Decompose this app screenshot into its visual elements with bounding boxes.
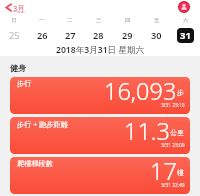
button[interactable]: Profile [178, 1, 190, 13]
staticText: 31 [180, 29, 191, 42]
staticText: 30 [151, 29, 162, 42]
staticText: 一 [39, 17, 45, 24]
staticText: 28 [93, 29, 104, 42]
button[interactable]: 27 [56, 27, 84, 43]
button[interactable]: 步行 [10, 77, 190, 114]
staticText: 25 [9, 29, 20, 42]
button[interactable]: 28 [84, 27, 113, 43]
staticText: 步 [177, 88, 184, 97]
staticText: 3/31 22:40 [161, 182, 185, 189]
staticText: 3/31 23:00 [161, 142, 185, 149]
staticText: 29 [122, 29, 133, 42]
staticText: 樓 [177, 168, 184, 177]
button[interactable]: 26 [28, 27, 56, 43]
staticText: 六 [183, 17, 189, 24]
button[interactable]: 3月 [4, 2, 25, 13]
button[interactable]: 29 [113, 27, 142, 43]
button[interactable]: 25 [0, 27, 28, 43]
staticText: 11.3 [124, 117, 170, 147]
button[interactable]: 爬樓梯段數 [10, 157, 190, 194]
staticText: 2018年3月31日 星期六 [56, 44, 145, 56]
staticText: 日 [11, 17, 17, 24]
staticText: 步行 [17, 79, 32, 88]
staticText: 26 [37, 29, 48, 42]
staticText: 步行 + 跑步距離 [17, 119, 68, 129]
staticText: 3月 [13, 3, 25, 13]
button[interactable]: 步行 + 跑步距離 [10, 117, 190, 154]
staticText: 二 [67, 17, 73, 24]
staticText: 公里 [170, 128, 184, 137]
button[interactable]: 31 [171, 27, 200, 43]
staticText: 爬樓梯段數 [17, 159, 53, 168]
staticText: 27 [65, 29, 76, 42]
button[interactable]: 30 [142, 27, 171, 43]
staticText: 16,093 [104, 77, 177, 107]
staticText: 四 [125, 17, 131, 24]
staticText: 3/31 23:10 [161, 102, 185, 109]
staticText: 17 [150, 157, 177, 187]
staticText: 健身 [10, 63, 27, 73]
staticText: 五 [154, 17, 160, 24]
staticText: 三 [96, 17, 102, 24]
